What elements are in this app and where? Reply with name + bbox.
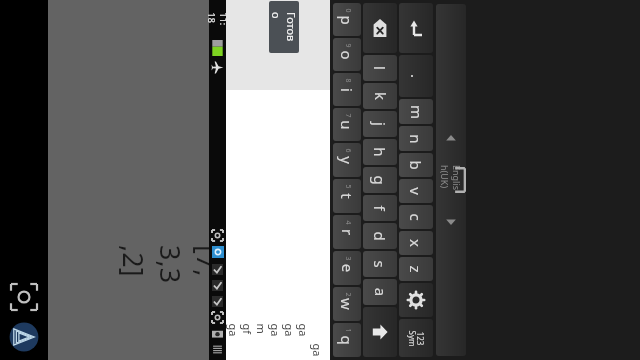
staticText: 7: [342, 113, 352, 118]
staticText: game_skintype:fullStandard_Custom: [309, 343, 324, 357]
staticText: game_limitworldsize:0: [281, 323, 296, 337]
staticText: .: [406, 73, 426, 78]
staticText: r: [337, 228, 357, 235]
staticText: m: [406, 104, 426, 119]
button[interactable]: .: [399, 55, 433, 97]
staticText: f: [370, 205, 390, 211]
button[interactable]: a: [363, 279, 397, 305]
staticText: t: [337, 193, 357, 199]
staticText: 9: [342, 43, 352, 48]
button[interactable]: r: [333, 215, 361, 249]
staticText: y: [337, 156, 357, 164]
staticText: English(UK): [439, 165, 463, 195]
staticText: g: [370, 175, 390, 185]
staticText: q: [337, 335, 357, 345]
staticText: 4: [342, 220, 352, 225]
button[interactable]: h: [363, 139, 397, 165]
staticText: s:[7,3,3,2]: [115, 245, 263, 285]
button[interactable]: 123 Sym: [399, 319, 433, 357]
staticText: k: [370, 91, 390, 100]
staticText: 2: [342, 292, 352, 297]
button[interactable]: x: [399, 231, 433, 255]
button[interactable]: d: [363, 223, 397, 249]
staticText: z: [406, 265, 426, 273]
button[interactable]: f: [363, 195, 397, 221]
staticText: c: [406, 213, 426, 221]
staticText: i: [337, 88, 357, 92]
staticText: j: [370, 122, 390, 126]
button[interactable]: o: [333, 38, 361, 71]
button[interactable]: Screenshot: [7, 280, 41, 314]
button[interactable]: k: [363, 83, 397, 109]
button[interactable]: n: [399, 126, 433, 151]
staticText: 3: [342, 256, 352, 261]
staticText: 0: [342, 8, 352, 13]
staticText: h: [370, 147, 390, 157]
button[interactable]: English(UK): [436, 4, 466, 356]
button[interactable]: Assistant: [7, 320, 41, 354]
button[interactable]: s: [363, 251, 397, 277]
staticText: 6: [342, 148, 352, 153]
staticText: mp_server_visible:1: [253, 323, 268, 337]
button[interactable]: b: [399, 153, 433, 177]
button[interactable]: Key: [363, 3, 397, 53]
staticText: Готово: [269, 12, 299, 42]
staticText: 5: [342, 184, 352, 189]
staticText: game_language:en_U: [295, 323, 310, 337]
button[interactable]: j: [363, 111, 397, 137]
staticText: 123 Sym: [406, 330, 425, 346]
button[interactable]: l: [363, 55, 397, 81]
button[interactable]: Key: [399, 3, 433, 53]
staticText: x: [406, 239, 426, 247]
button[interactable]: u: [333, 108, 361, 141]
button[interactable]: e: [333, 251, 361, 285]
staticText: b: [406, 160, 426, 170]
staticText: p: [337, 15, 357, 25]
staticText: gfx_dpadscale:1: [239, 323, 254, 337]
staticText: v: [406, 187, 426, 195]
button[interactable]: c: [399, 205, 433, 229]
staticText: a: [370, 287, 390, 296]
button[interactable]: g: [363, 167, 397, 193]
staticText: w: [337, 298, 357, 310]
button[interactable]: q: [333, 323, 361, 357]
button[interactable]: p: [333, 3, 361, 36]
staticText: 11:18: [205, 12, 229, 29]
staticText: u: [337, 120, 357, 130]
button[interactable]: Готово: [269, 1, 299, 53]
staticText: e: [337, 263, 357, 272]
staticText: 8: [342, 78, 352, 83]
button[interactable]: w: [333, 287, 361, 321]
button[interactable]: Key: [399, 283, 433, 317]
staticText: s: [370, 260, 390, 268]
button[interactable]: z: [399, 257, 433, 281]
staticText: game_flatworldlayers:[7,3,3,2]: [267, 323, 282, 337]
staticText: o: [337, 50, 357, 60]
staticText: l: [370, 66, 390, 70]
button[interactable]: m: [399, 99, 433, 124]
staticText: game_thirdperson:0: [225, 323, 240, 337]
button[interactable]: y: [333, 143, 361, 177]
staticText: 1: [342, 328, 352, 333]
staticText: d: [370, 231, 390, 241]
button[interactable]: i: [333, 73, 361, 106]
staticText: n: [406, 134, 426, 144]
button[interactable]: t: [333, 179, 361, 213]
button[interactable]: Key: [363, 307, 397, 357]
button[interactable]: v: [399, 179, 433, 203]
